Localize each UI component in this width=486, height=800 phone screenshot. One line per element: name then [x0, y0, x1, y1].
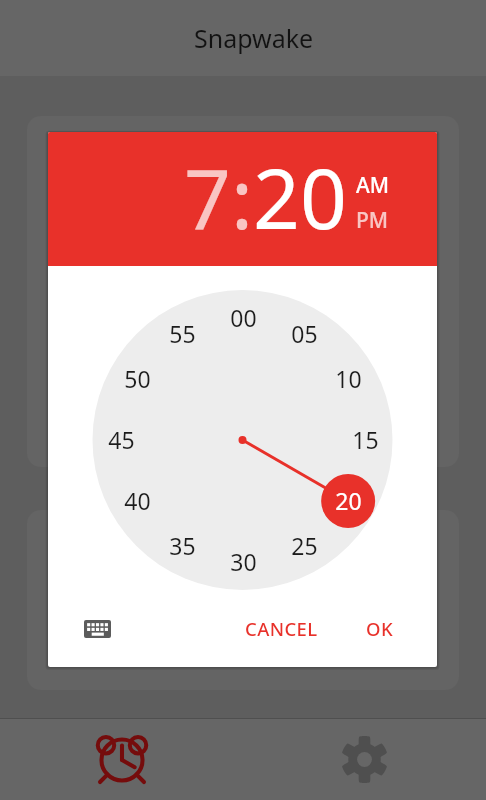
staticText: 7 — [184, 141, 231, 253]
button[interactable]: 50 — [113, 363, 161, 393]
button[interactable]: Switch to text input mode — [77, 609, 117, 649]
button[interactable]: Alarms — [0, 719, 243, 800]
button[interactable]: 35 — [158, 530, 206, 560]
staticText: PM — [356, 206, 389, 235]
staticText: 05 — [291, 318, 318, 348]
staticText: Snapwake — [194, 21, 314, 55]
staticText: 00 — [230, 302, 257, 332]
button[interactable]: 20 — [253, 141, 347, 253]
button[interactable]: 25 — [280, 530, 328, 560]
button[interactable]: 05 — [280, 318, 328, 348]
staticText: 55 — [169, 318, 196, 348]
button[interactable]: CANCEL — [237, 606, 326, 651]
button[interactable] — [27, 116, 459, 467]
staticText: 15 — [352, 424, 379, 454]
staticText: 20 — [253, 141, 347, 253]
button[interactable]: 55 — [158, 318, 206, 348]
button[interactable]: 30 — [219, 546, 267, 576]
staticText: CANCEL — [245, 616, 318, 641]
button[interactable]: 00 — [219, 302, 267, 332]
button[interactable]: PM — [356, 206, 389, 235]
staticText: 50 — [124, 363, 151, 393]
button[interactable]: 45 — [97, 424, 145, 454]
button[interactable]: AM — [356, 171, 390, 200]
button[interactable]: 15 — [341, 424, 389, 454]
staticText: 40 — [124, 485, 151, 515]
staticText: 35 — [169, 530, 196, 560]
staticText: 30 — [230, 546, 257, 576]
staticText: 25 — [291, 530, 318, 560]
button[interactable]: 40 — [113, 485, 161, 515]
staticText: 10 — [335, 363, 362, 393]
staticText: : — [231, 141, 253, 253]
button[interactable]: Settings — [243, 719, 486, 800]
staticText: AM — [356, 171, 390, 200]
staticText: 45 — [108, 424, 135, 454]
button[interactable]: OK — [358, 606, 401, 651]
button[interactable]: 10 — [324, 363, 372, 393]
button[interactable] — [27, 510, 459, 690]
button[interactable]: 7 — [184, 141, 231, 253]
staticText: OK — [366, 616, 393, 641]
button[interactable]: 20 — [324, 485, 372, 515]
staticText: 20 — [335, 485, 362, 515]
